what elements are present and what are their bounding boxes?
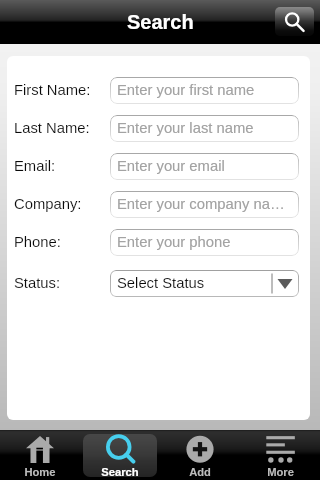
staticText: Company: <box>14 196 82 213</box>
staticText: Add <box>189 466 211 477</box>
staticText: Enter your company na… <box>117 196 285 213</box>
button[interactable]: Enter your first name <box>110 77 299 104</box>
button[interactable]: Select Status <box>110 270 299 297</box>
staticText: First Name: <box>14 82 91 99</box>
button[interactable]: Home <box>3 434 77 477</box>
button[interactable]: Search <box>83 434 157 477</box>
staticText: Select Status <box>117 275 205 292</box>
button[interactable]: Enter your email <box>110 153 299 180</box>
button[interactable]: Enter your phone <box>110 229 299 256</box>
staticText: Enter your last name <box>117 120 254 137</box>
staticText: Email: <box>14 158 56 175</box>
staticText: Last Name: <box>14 120 90 137</box>
button[interactable]: Search <box>275 7 314 36</box>
staticText: Search <box>127 11 194 33</box>
button[interactable]: More <box>243 434 317 477</box>
staticText: Search <box>101 466 139 477</box>
staticText: More <box>267 466 294 477</box>
staticText: Phone: <box>14 234 61 251</box>
staticText: Home <box>24 466 56 477</box>
staticText: Enter your email <box>117 158 225 175</box>
button[interactable]: Enter your company na… <box>110 191 299 218</box>
staticText: Enter your first name <box>117 82 255 99</box>
button[interactable]: Enter your last name <box>110 115 299 142</box>
staticText: Status: <box>14 275 61 292</box>
button[interactable]: Add <box>163 434 237 477</box>
staticText: Enter your phone <box>117 234 231 251</box>
